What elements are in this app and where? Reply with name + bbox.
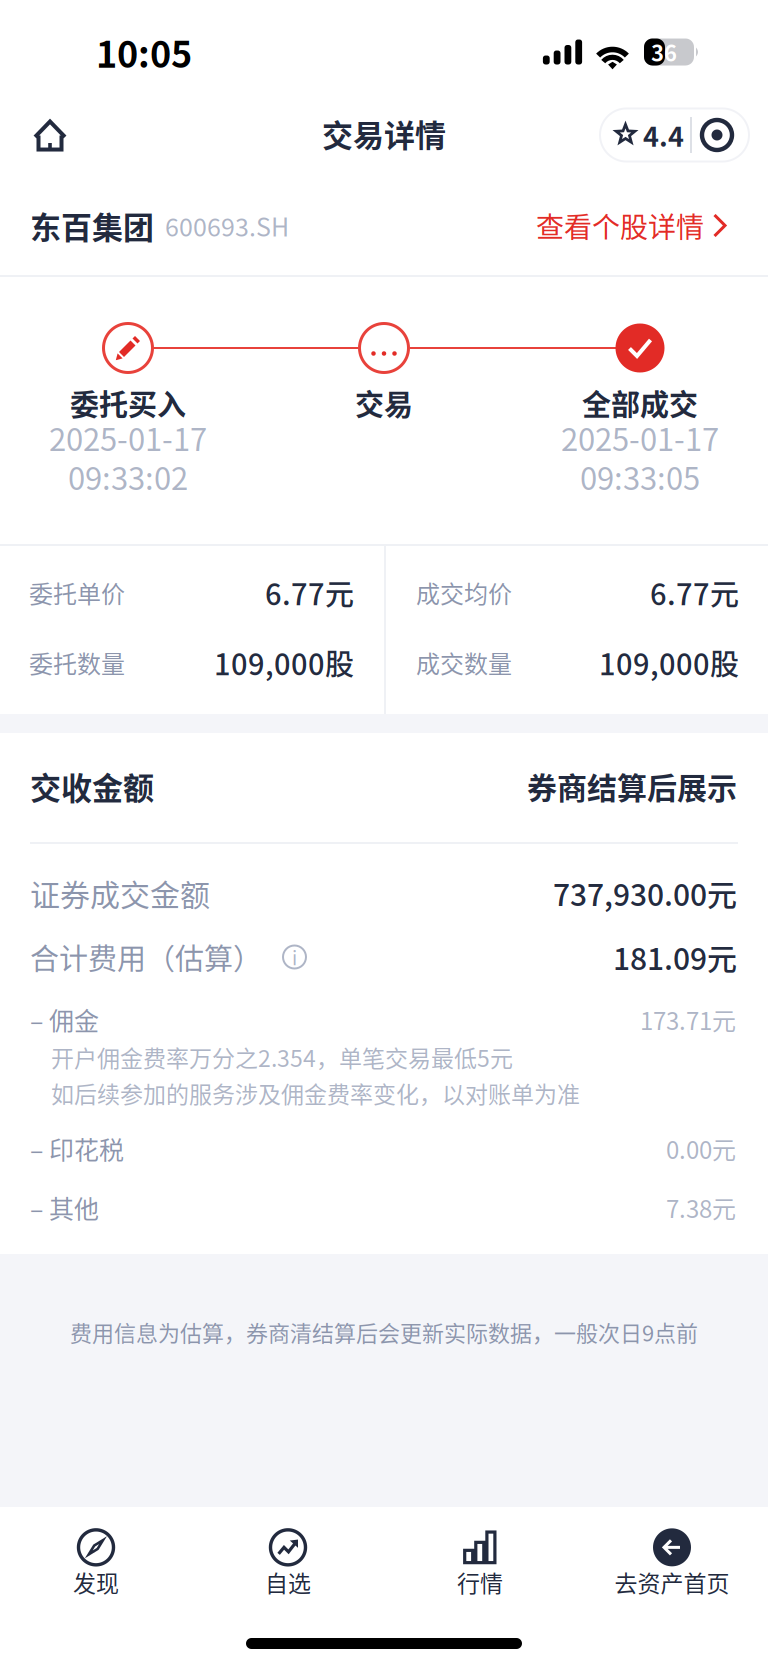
staticText: 6.77元: [265, 571, 354, 613]
button[interactable]: 发现: [0, 1519, 192, 1609]
staticText: 交收金额: [30, 764, 154, 808]
staticText: 合计费用（估算）: [30, 936, 262, 978]
staticText: 查看个股详情: [536, 205, 704, 246]
staticText: 36: [651, 36, 677, 68]
button[interactable]: 行情: [384, 1519, 576, 1609]
staticText: 发现: [73, 1565, 119, 1599]
staticText: 2025-01-17: [561, 415, 719, 460]
staticText: 委托单价: [29, 575, 125, 610]
staticText: 去资产首页: [614, 1565, 729, 1599]
staticText: 自选: [265, 1565, 311, 1599]
staticText: 交易: [355, 382, 413, 424]
staticText: 券商结算后展示: [527, 764, 737, 808]
button[interactable]: 去资产首页: [576, 1519, 768, 1609]
staticText: 173.71元: [640, 1002, 736, 1037]
staticText: 行情: [457, 1565, 503, 1599]
staticText: 109,000股: [214, 641, 354, 683]
staticText: 7.38元: [666, 1190, 736, 1225]
button[interactable]: 自选: [192, 1519, 384, 1609]
staticText: 交易详情: [322, 111, 446, 156]
button[interactable]: 评分与录制: [600, 108, 749, 162]
staticText: 开户佣金费率万分之2.354，单笔交易最低5元: [51, 1040, 513, 1074]
staticText: 09:33:02: [68, 454, 188, 499]
staticText: 如后续参加的服务涉及佣金费率变化，以对账单为准: [51, 1076, 580, 1110]
staticText: – 佣金: [30, 1001, 99, 1038]
staticText: 委托数量: [29, 645, 125, 680]
staticText: 109,000股: [599, 641, 739, 683]
staticText: 证券成交金额: [30, 871, 210, 915]
staticText: – 印花税: [30, 1130, 124, 1167]
staticText: i: [292, 943, 297, 971]
staticText: 181.09元: [613, 935, 737, 979]
staticText: – 其他: [30, 1189, 99, 1226]
staticText: 0.00元: [666, 1131, 736, 1166]
button[interactable]: 首页: [0, 108, 83, 168]
staticText: 委托买入: [70, 382, 186, 424]
button[interactable]: 查看个股详情: [536, 195, 728, 256]
staticText: 费用信息为估算，券商清结算后会更新实际数据，一般次日9点前: [70, 1316, 698, 1348]
staticText: 09:33:05: [580, 454, 700, 499]
staticText: 全部成交: [582, 382, 698, 424]
staticText: 6.77元: [650, 571, 739, 613]
staticText: 737,930.00元: [553, 871, 737, 915]
staticText: 600693.SH: [165, 207, 289, 244]
staticText: 成交数量: [416, 645, 512, 680]
staticText: 10:05: [96, 26, 192, 78]
staticText: 成交均价: [416, 575, 512, 610]
staticText: 东百集团: [30, 203, 154, 248]
staticText: 2025-01-17: [49, 415, 207, 460]
staticText: 4.4: [643, 115, 684, 155]
